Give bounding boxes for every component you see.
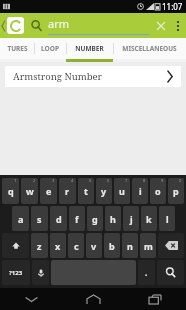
staticText: b	[109, 240, 115, 252]
button[interactable]: Search	[157, 260, 184, 285]
other: Navigate up	[1, 21, 6, 31]
staticText: u	[119, 185, 125, 197]
button[interactable]: .	[138, 260, 155, 285]
button[interactable]: c	[68, 233, 84, 258]
button[interactable]: Voice input	[32, 260, 49, 285]
staticText: k	[146, 213, 152, 225]
button[interactable]: a	[12, 206, 29, 231]
staticText: n	[127, 240, 133, 252]
staticText: 6	[107, 178, 110, 183]
button[interactable]: MISCELLANEOUS	[113, 38, 186, 59]
button[interactable]: Home	[62, 288, 124, 310]
button[interactable]: n	[122, 233, 138, 258]
button[interactable]: u	[114, 178, 130, 204]
other: Search	[31, 20, 42, 31]
staticText: 5	[89, 178, 92, 183]
staticText: t	[84, 185, 88, 197]
button[interactable]: Hide keyboard	[0, 288, 62, 310]
button[interactable]: More options	[172, 13, 184, 38]
button[interactable]: t	[78, 178, 94, 204]
staticText: l	[166, 213, 169, 225]
button[interactable]: NUMBER	[66, 38, 113, 59]
staticText: e	[46, 185, 52, 197]
staticText: 4	[71, 178, 74, 183]
button[interactable]: l	[159, 206, 175, 231]
button[interactable]: Delete	[158, 233, 184, 258]
staticText: 7	[125, 178, 128, 183]
button[interactable]: Armstrong Number	[5, 66, 181, 87]
staticText: 3	[52, 178, 55, 183]
staticText: 1	[14, 178, 17, 183]
staticText: y	[101, 185, 107, 197]
staticText: .	[145, 267, 148, 278]
staticText: 8	[143, 178, 146, 183]
button[interactable]: k	[141, 206, 157, 231]
staticText: 11:07	[162, 1, 183, 12]
button[interactable]: b	[104, 233, 120, 258]
staticText: LOOP	[41, 44, 59, 53]
other: Shift	[11, 241, 21, 251]
staticText: h	[110, 213, 116, 225]
staticText: z	[37, 240, 42, 252]
staticText: g	[92, 213, 98, 225]
button[interactable]: p	[168, 178, 184, 204]
button[interactable]: r	[59, 178, 76, 204]
staticText: f	[75, 213, 79, 225]
staticText: q	[8, 185, 14, 197]
button[interactable]: App logo	[7, 17, 24, 34]
button[interactable]: e	[40, 178, 57, 204]
staticText: ?123	[9, 269, 23, 277]
staticText: s	[37, 213, 42, 225]
staticText: a	[18, 213, 24, 225]
button[interactable]: g	[87, 206, 103, 231]
button[interactable]: Clear search	[153, 18, 169, 34]
button[interactable]: z	[31, 233, 48, 258]
staticText: x	[55, 240, 61, 252]
button[interactable]: ?123	[2, 260, 30, 285]
other: Search	[165, 267, 176, 278]
staticText: m	[144, 240, 153, 252]
other: Voice input	[36, 268, 46, 278]
button[interactable]: Shift	[2, 233, 29, 258]
staticText: 9	[161, 178, 164, 183]
staticText: MISCELLANEOUS	[122, 44, 177, 53]
staticText: j	[130, 213, 133, 225]
staticText: o	[155, 185, 161, 197]
button[interactable]: m	[140, 233, 156, 258]
staticText: arm	[48, 16, 69, 31]
button[interactable]: TURES	[0, 38, 34, 59]
button[interactable]: y	[96, 178, 112, 204]
button[interactable]: q	[2, 178, 19, 204]
button[interactable]: h	[105, 206, 121, 231]
button[interactable]: s	[31, 206, 48, 231]
staticText: p	[173, 185, 179, 197]
staticText: Armstrong Number	[13, 70, 103, 83]
button[interactable]: LOOP	[34, 38, 66, 59]
staticText: v	[91, 240, 97, 252]
staticText: r	[65, 185, 70, 197]
staticText: TURES	[7, 44, 28, 53]
staticText: 2	[33, 178, 36, 183]
staticText: NUMBER	[75, 44, 104, 53]
button[interactable]: w	[21, 178, 38, 204]
button[interactable]: v	[86, 233, 102, 258]
button[interactable]: j	[123, 206, 139, 231]
button[interactable]: d	[50, 206, 67, 231]
button[interactable]: Recent apps	[124, 288, 186, 310]
button[interactable]: i	[132, 178, 148, 204]
other: Delete	[165, 241, 178, 250]
staticText: 0	[179, 178, 182, 183]
staticText: i	[139, 185, 142, 197]
button[interactable]: f	[69, 206, 85, 231]
staticText: c	[74, 240, 79, 252]
staticText: d	[56, 213, 62, 225]
button[interactable]: x	[50, 233, 66, 258]
button[interactable]: o	[150, 178, 166, 204]
staticText: w	[26, 185, 34, 197]
